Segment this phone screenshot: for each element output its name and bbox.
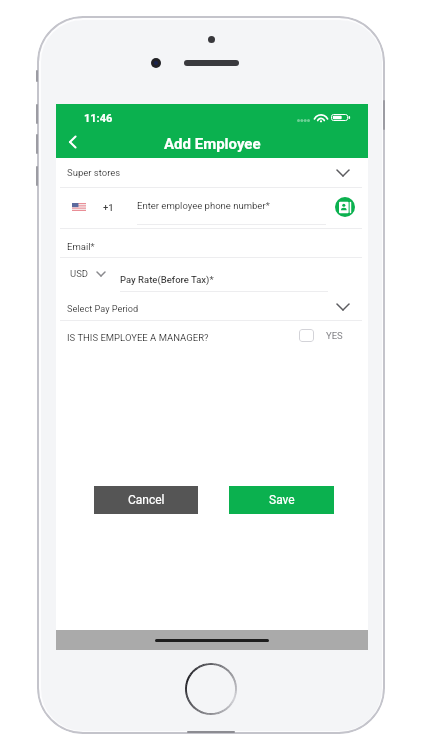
button[interactable]: Back: [56, 126, 90, 158]
staticText: 11:46: [84, 112, 113, 125]
staticText: Add Employee: [164, 135, 261, 153]
staticText: Cancel: [128, 493, 165, 507]
button[interactable]: [56, 294, 368, 323]
button[interactable]: Save: [229, 486, 334, 514]
staticText: Select Pay Period: [67, 303, 139, 314]
staticText: USD: [70, 268, 89, 279]
button[interactable]: Cancel: [94, 486, 198, 514]
button[interactable]: Choose from contacts: [335, 197, 355, 217]
button[interactable]: YES: [299, 326, 368, 344]
staticText: +1: [103, 202, 114, 213]
staticText: Save: [269, 493, 295, 507]
staticText: IS THIS EMPLOYEE A MANAGER?: [67, 332, 209, 343]
staticText: YES: [326, 330, 343, 341]
button[interactable]: [56, 196, 368, 228]
staticText: Pay Rate(Before Tax)*: [120, 274, 214, 285]
staticText: Email*: [67, 241, 95, 252]
staticText: Super stores: [67, 167, 121, 178]
button[interactable]: [56, 160, 368, 190]
staticText: Enter employee phone number*: [137, 200, 270, 211]
button[interactable]: Home: [184, 662, 238, 716]
button[interactable]: [56, 264, 368, 300]
button[interactable]: [56, 233, 368, 260]
